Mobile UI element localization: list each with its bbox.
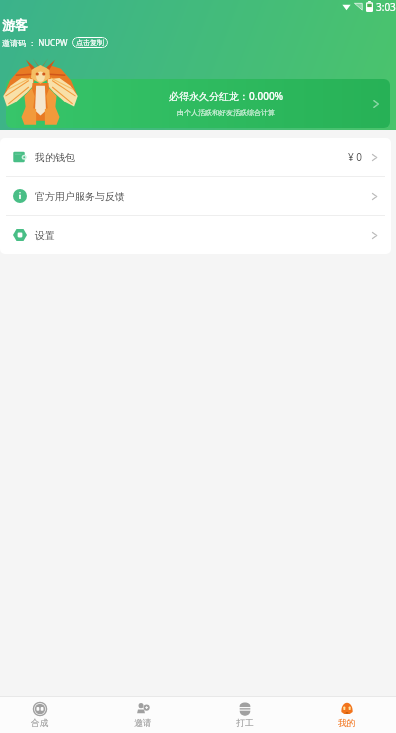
button[interactable]: 我的: [296, 697, 396, 733]
button[interactable]: 官方用户服务与反馈: [0, 177, 391, 215]
staticText: 合成: [31, 718, 49, 729]
staticText: 3:03: [376, 0, 396, 13]
staticText: 我的: [338, 718, 356, 729]
staticText: 必得永久分红龙：0.000%: [169, 89, 284, 103]
staticText: 点击复制: [76, 38, 104, 47]
staticText: 我的钱包: [35, 151, 75, 164]
staticText: 设置: [35, 229, 55, 242]
staticText: 邀请: [134, 718, 152, 729]
staticText: 打工: [236, 718, 254, 729]
staticText: 官方用户服务与反馈: [35, 190, 125, 203]
button[interactable]: 点击复制: [72, 37, 108, 48]
button[interactable]: 设置: [0, 216, 391, 254]
staticText: 游客: [2, 17, 28, 33]
button[interactable]: 邀请: [92, 697, 194, 733]
button[interactable]: 必得永久分红龙：0.000%: [6, 79, 390, 128]
staticText: ¥ 0: [348, 150, 363, 164]
staticText: 由个人活跃和好友活跃综合计算: [177, 108, 275, 117]
staticText: 邀请码 ： NUCPW: [2, 37, 68, 48]
button[interactable]: 打工: [194, 697, 296, 733]
button[interactable]: 合成: [0, 697, 91, 733]
button[interactable]: 我的钱包: [0, 138, 391, 176]
